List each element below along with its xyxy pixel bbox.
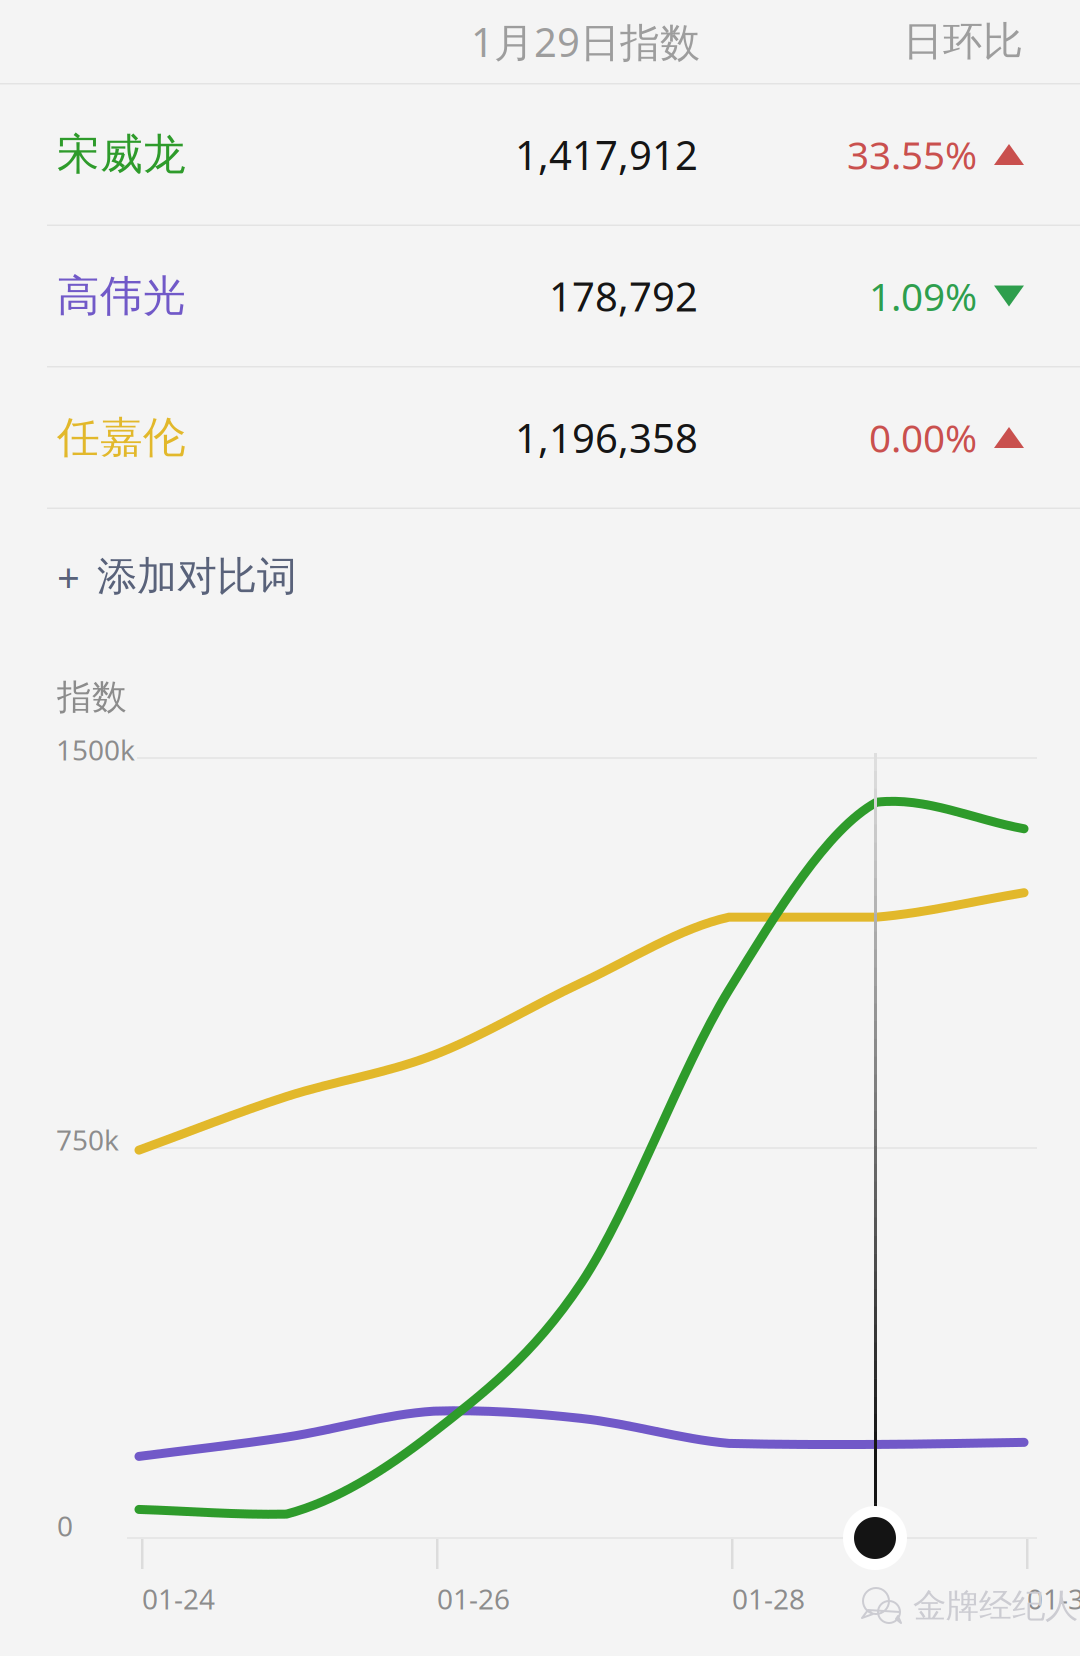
staticText: 宋威龙 bbox=[57, 128, 186, 181]
staticText: 01-28 bbox=[732, 1580, 805, 1617]
staticText: + bbox=[57, 550, 80, 603]
staticText: 1500k bbox=[56, 731, 135, 768]
staticText: 01-26 bbox=[437, 1580, 510, 1617]
staticText: 1,196,358 bbox=[515, 411, 698, 464]
button[interactable]: 高伟光 bbox=[0, 226, 1080, 366]
button[interactable]: 任嘉伦 bbox=[0, 367, 1080, 507]
staticText: 任嘉伦 bbox=[57, 411, 186, 464]
button[interactable]: 宋威龙 bbox=[0, 84, 1080, 224]
staticText: 0 bbox=[57, 1507, 73, 1544]
staticText: 金牌经纪人 bbox=[913, 1585, 1078, 1626]
staticText: 高伟光 bbox=[57, 270, 186, 322]
staticText: 750k bbox=[56, 1121, 119, 1158]
staticText: 1.09% bbox=[869, 270, 977, 322]
staticText: 178,792 bbox=[549, 269, 698, 322]
staticText: 0.00% bbox=[869, 412, 977, 463]
staticText: 1月29日指数 bbox=[471, 15, 700, 68]
staticText: 添加对比词 bbox=[97, 552, 297, 601]
staticText: 1,417,912 bbox=[515, 128, 698, 181]
staticText: 日环比 bbox=[903, 17, 1023, 66]
staticText: 33.55% bbox=[847, 129, 977, 180]
staticText: 01-24 bbox=[142, 1580, 215, 1617]
button[interactable]: + bbox=[0, 509, 1080, 644]
staticText: 01-30 bbox=[1027, 1580, 1080, 1617]
staticText: 指数 bbox=[57, 676, 127, 719]
